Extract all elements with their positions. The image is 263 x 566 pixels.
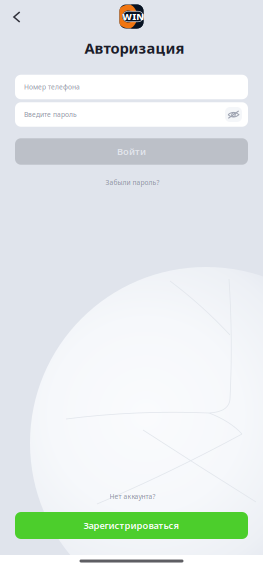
staticText: Зарегистрироваться: [83, 519, 179, 532]
staticText: Номер телефона: [24, 83, 80, 91]
button[interactable]: Зарегистрироваться: [15, 512, 248, 539]
button[interactable]: Show password: [225, 107, 242, 122]
staticText: Введите пароль: [24, 110, 77, 119]
staticText: Забыли пароль?: [105, 178, 159, 187]
staticText: WIN: [122, 10, 144, 22]
button[interactable]: Забыли пароль?: [87, 175, 177, 189]
staticText: Авторизация: [84, 38, 184, 58]
staticText: Нет аккаунта?: [109, 492, 155, 501]
button[interactable]: Войти: [15, 138, 248, 165]
staticText: Войти: [117, 145, 146, 158]
button[interactable]: Back: [2, 2, 32, 32]
